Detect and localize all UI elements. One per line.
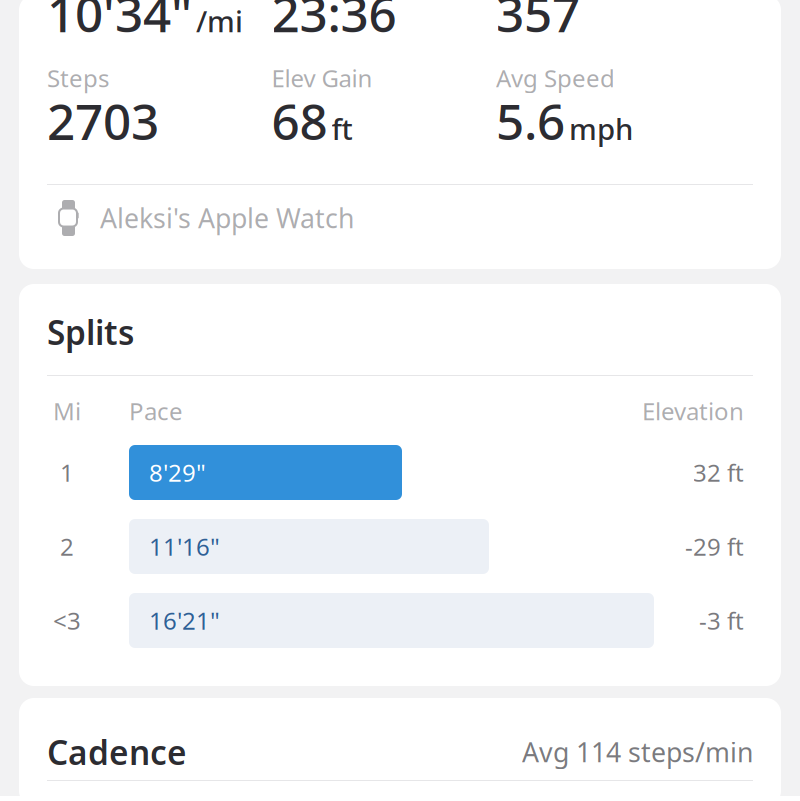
staticText: 68 <box>271 88 327 153</box>
staticText: 2703 <box>47 88 159 153</box>
staticText: 10'34" <box>47 0 192 46</box>
staticText: 1 <box>60 457 74 488</box>
staticText: 8'29" <box>149 457 206 488</box>
staticText: Elevation <box>642 395 744 427</box>
staticText: /mi <box>196 1 243 40</box>
staticText: Cadence <box>47 730 187 774</box>
staticText: Elev Gain <box>271 62 372 94</box>
staticText: 23:36 <box>271 0 396 46</box>
staticText: 11'16" <box>149 531 220 562</box>
staticText: Steps <box>47 62 109 94</box>
staticText: ft <box>331 109 352 148</box>
staticText: Pace <box>129 395 183 427</box>
staticText: Avg 114 steps/min <box>522 734 753 770</box>
staticText: -3 ft <box>699 605 744 636</box>
staticText: Mi <box>53 395 81 427</box>
staticText: 357 <box>496 0 580 46</box>
staticText: 16'21" <box>149 605 220 636</box>
staticText: 2 <box>60 531 74 562</box>
staticText: Splits <box>47 310 134 354</box>
staticText: mph <box>569 109 633 148</box>
staticText: Avg Speed <box>496 62 615 94</box>
staticText: <3 <box>53 605 81 636</box>
button[interactable]: Aleksi's Apple Watch <box>47 200 753 236</box>
staticText: 32 ft <box>693 457 744 488</box>
staticText: Aleksi's Apple Watch <box>100 200 354 236</box>
staticText: -29 ft <box>685 531 744 562</box>
staticText: 5.6 <box>496 88 565 153</box>
